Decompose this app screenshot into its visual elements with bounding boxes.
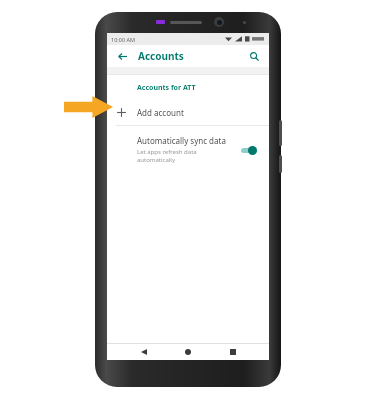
staticText: 10:00 AM bbox=[111, 36, 135, 43]
staticText: Accounts for ATT bbox=[137, 83, 196, 93]
button[interactable]: Automatically sync data bbox=[107, 126, 269, 173]
button[interactable]: Add account bbox=[107, 99, 269, 125]
staticText: Let apps refresh data automatically bbox=[137, 148, 197, 164]
button[interactable]: Back bbox=[136, 344, 152, 360]
button[interactable]: Home bbox=[180, 344, 196, 360]
button[interactable]: Automatically sync data toggle bbox=[239, 144, 259, 156]
staticText: Add account bbox=[137, 107, 184, 118]
button[interactable]: Back bbox=[115, 49, 129, 63]
button[interactable]: Recent apps bbox=[225, 344, 241, 360]
staticText: Accounts bbox=[138, 49, 184, 63]
button[interactable]: Search bbox=[247, 49, 261, 63]
staticText: Automatically sync data bbox=[137, 135, 226, 146]
